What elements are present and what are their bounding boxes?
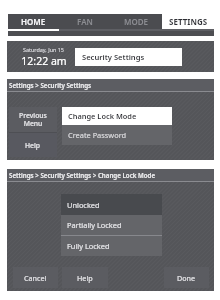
staticText: SETTINGS <box>169 16 208 27</box>
button[interactable]: Done <box>164 267 209 288</box>
button[interactable]: Previous Menu <box>9 107 57 132</box>
button[interactable]: FAN <box>59 14 110 29</box>
button[interactable]: Change Lock Mode <box>62 107 172 125</box>
staticText: FAN <box>77 16 93 27</box>
staticText: Previous Menu <box>19 111 47 128</box>
staticText: Settings > Security Settings <box>9 81 92 89</box>
staticText: HOME <box>21 16 46 27</box>
staticText: Partially Locked <box>67 220 122 230</box>
button[interactable]: Partially Locked <box>61 215 162 235</box>
button[interactable]: Help <box>62 267 108 288</box>
staticText: Create Password <box>68 130 127 140</box>
staticText: Help <box>77 273 93 283</box>
button[interactable]: Help <box>9 133 57 157</box>
staticText: Security Settings <box>82 52 145 62</box>
button[interactable]: Fully Locked <box>61 236 162 256</box>
staticText: 12:22 am <box>21 54 67 68</box>
staticText: Saturday, Jun 15 <box>23 46 64 53</box>
button[interactable]: Cancel <box>13 267 58 288</box>
staticText: MODE <box>124 16 149 27</box>
staticText: Done <box>177 273 196 283</box>
button[interactable]: Unlocked <box>61 194 162 215</box>
staticText: Unlocked <box>67 200 100 210</box>
staticText: Cancel <box>24 273 47 283</box>
button[interactable]: MODE <box>110 14 162 29</box>
button[interactable]: HOME <box>8 14 59 29</box>
button[interactable]: Security Settings <box>75 48 182 66</box>
staticText: Change Lock Mode <box>68 111 137 121</box>
button[interactable]: SETTINGS <box>162 14 214 29</box>
staticText: Fully Locked <box>67 241 110 251</box>
staticText: Settings > Security Settings > Change Lo… <box>9 171 156 179</box>
staticText: Help <box>25 141 41 150</box>
button[interactable]: Create Password <box>62 125 172 145</box>
